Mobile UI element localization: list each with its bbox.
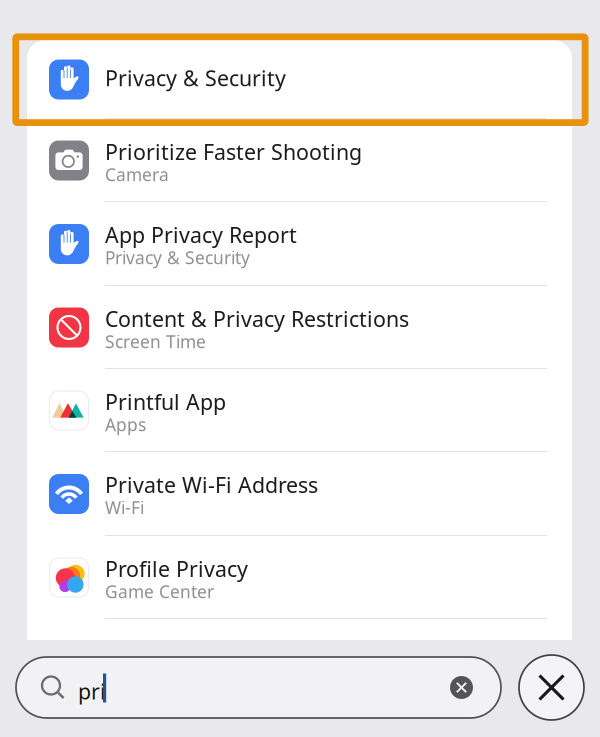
button[interactable]: Prioritize Faster Shooting (27, 119, 572, 202)
button[interactable]: Close search (519, 655, 584, 720)
button[interactable]: Private Wi-Fi Address (27, 452, 572, 536)
staticText: Profile Privacy (105, 554, 248, 583)
button[interactable]: Profile Privacy (27, 536, 572, 619)
staticText: Privacy & Security (105, 246, 250, 269)
staticText: Prioritize Faster Shooting (105, 137, 362, 166)
button[interactable]: Privacy & Security (27, 40, 572, 119)
staticText: Game Center (105, 580, 214, 603)
button[interactable]: Search field: pri (16, 657, 501, 718)
staticText: Camera (105, 163, 169, 186)
staticText: Wi-Fi (105, 496, 144, 519)
staticText: Private Wi-Fi Address (105, 470, 318, 499)
staticText: Privacy & Security (105, 64, 286, 92)
button[interactable]: Content & Privacy Restrictions (27, 286, 572, 369)
staticText: App Privacy Report (105, 220, 297, 249)
button[interactable]: App Privacy Report (27, 202, 572, 286)
staticText: Content & Privacy Restrictions (105, 304, 409, 333)
staticText: Printful App (105, 387, 226, 416)
staticText: Apps (105, 413, 146, 436)
button[interactable]: Printful App (27, 369, 572, 452)
staticText: pri (78, 677, 106, 705)
staticText: Screen Time (105, 330, 206, 353)
